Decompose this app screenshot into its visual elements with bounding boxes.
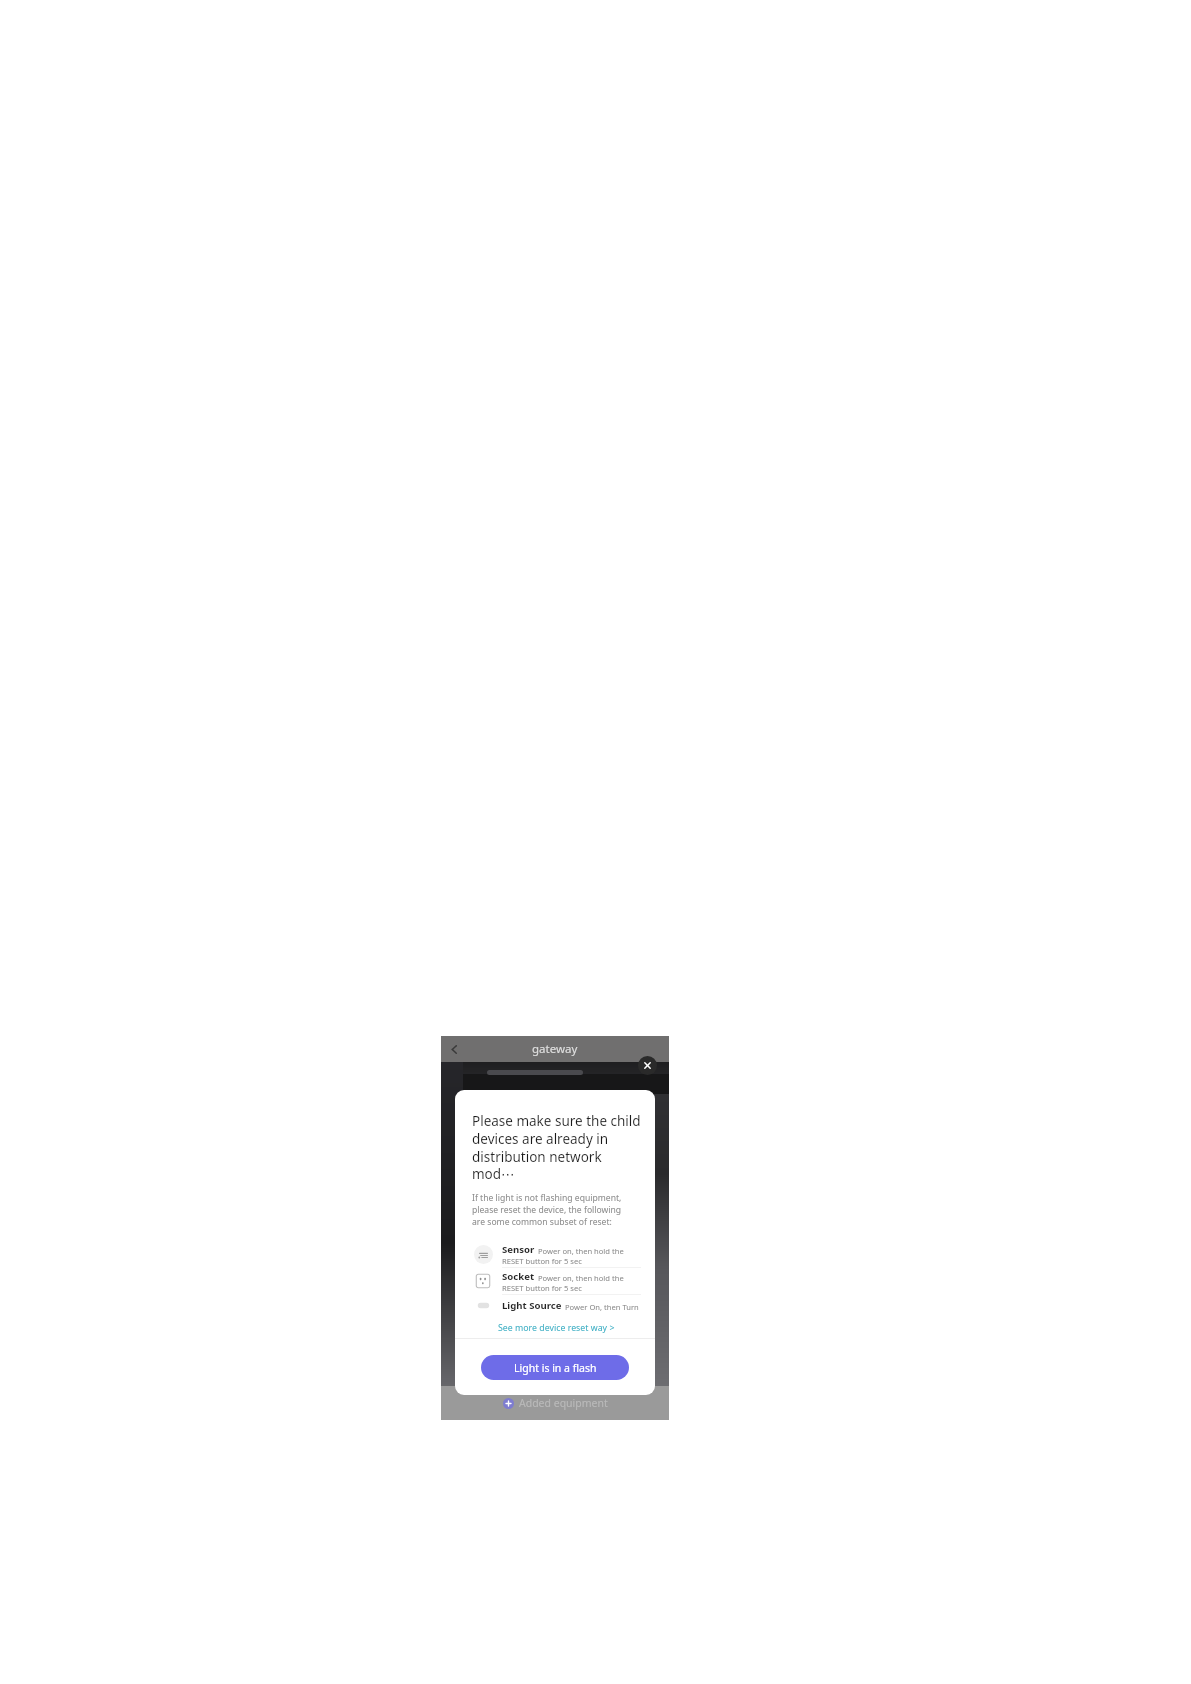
staticText: RESET button for 5 sec: [502, 1256, 582, 1266]
staticText: Please make sure the child: [472, 1112, 641, 1130]
staticText: Added equipment: [519, 1396, 608, 1410]
staticText: If the light is not flashing equipment,: [472, 1192, 622, 1204]
button[interactable]: Light Source: [472, 1295, 641, 1316]
staticText: distribution network mod⋯: [472, 1148, 641, 1183]
staticText: please reset the device, the following: [472, 1204, 622, 1216]
staticText: Socket: [502, 1270, 535, 1283]
staticText: Power on, then hold the: [538, 1273, 624, 1283]
staticText: Light Source: [502, 1299, 562, 1312]
button[interactable]: Back: [441, 1036, 467, 1062]
staticText: devices are already in: [472, 1130, 609, 1148]
staticText: gateway: [532, 1041, 578, 1057]
button[interactable]: Socket: [472, 1268, 641, 1294]
staticText: See more device reset way >: [498, 1322, 615, 1334]
staticText: are some common subset of reset:: [472, 1216, 612, 1228]
staticText: Sensor: [502, 1243, 535, 1256]
staticText: Light is in a flash: [514, 1361, 597, 1375]
staticText: Power on, then hold the: [538, 1246, 624, 1256]
button[interactable]: Light is in a flash: [481, 1355, 629, 1380]
staticText: Power On, then Turn: [565, 1302, 639, 1312]
button[interactable]: Sensor: [472, 1241, 641, 1267]
staticText: RESET button for 5 sec: [502, 1283, 582, 1293]
button[interactable]: Close: [638, 1056, 657, 1075]
button[interactable]: See more device reset way >: [472, 1322, 641, 1334]
